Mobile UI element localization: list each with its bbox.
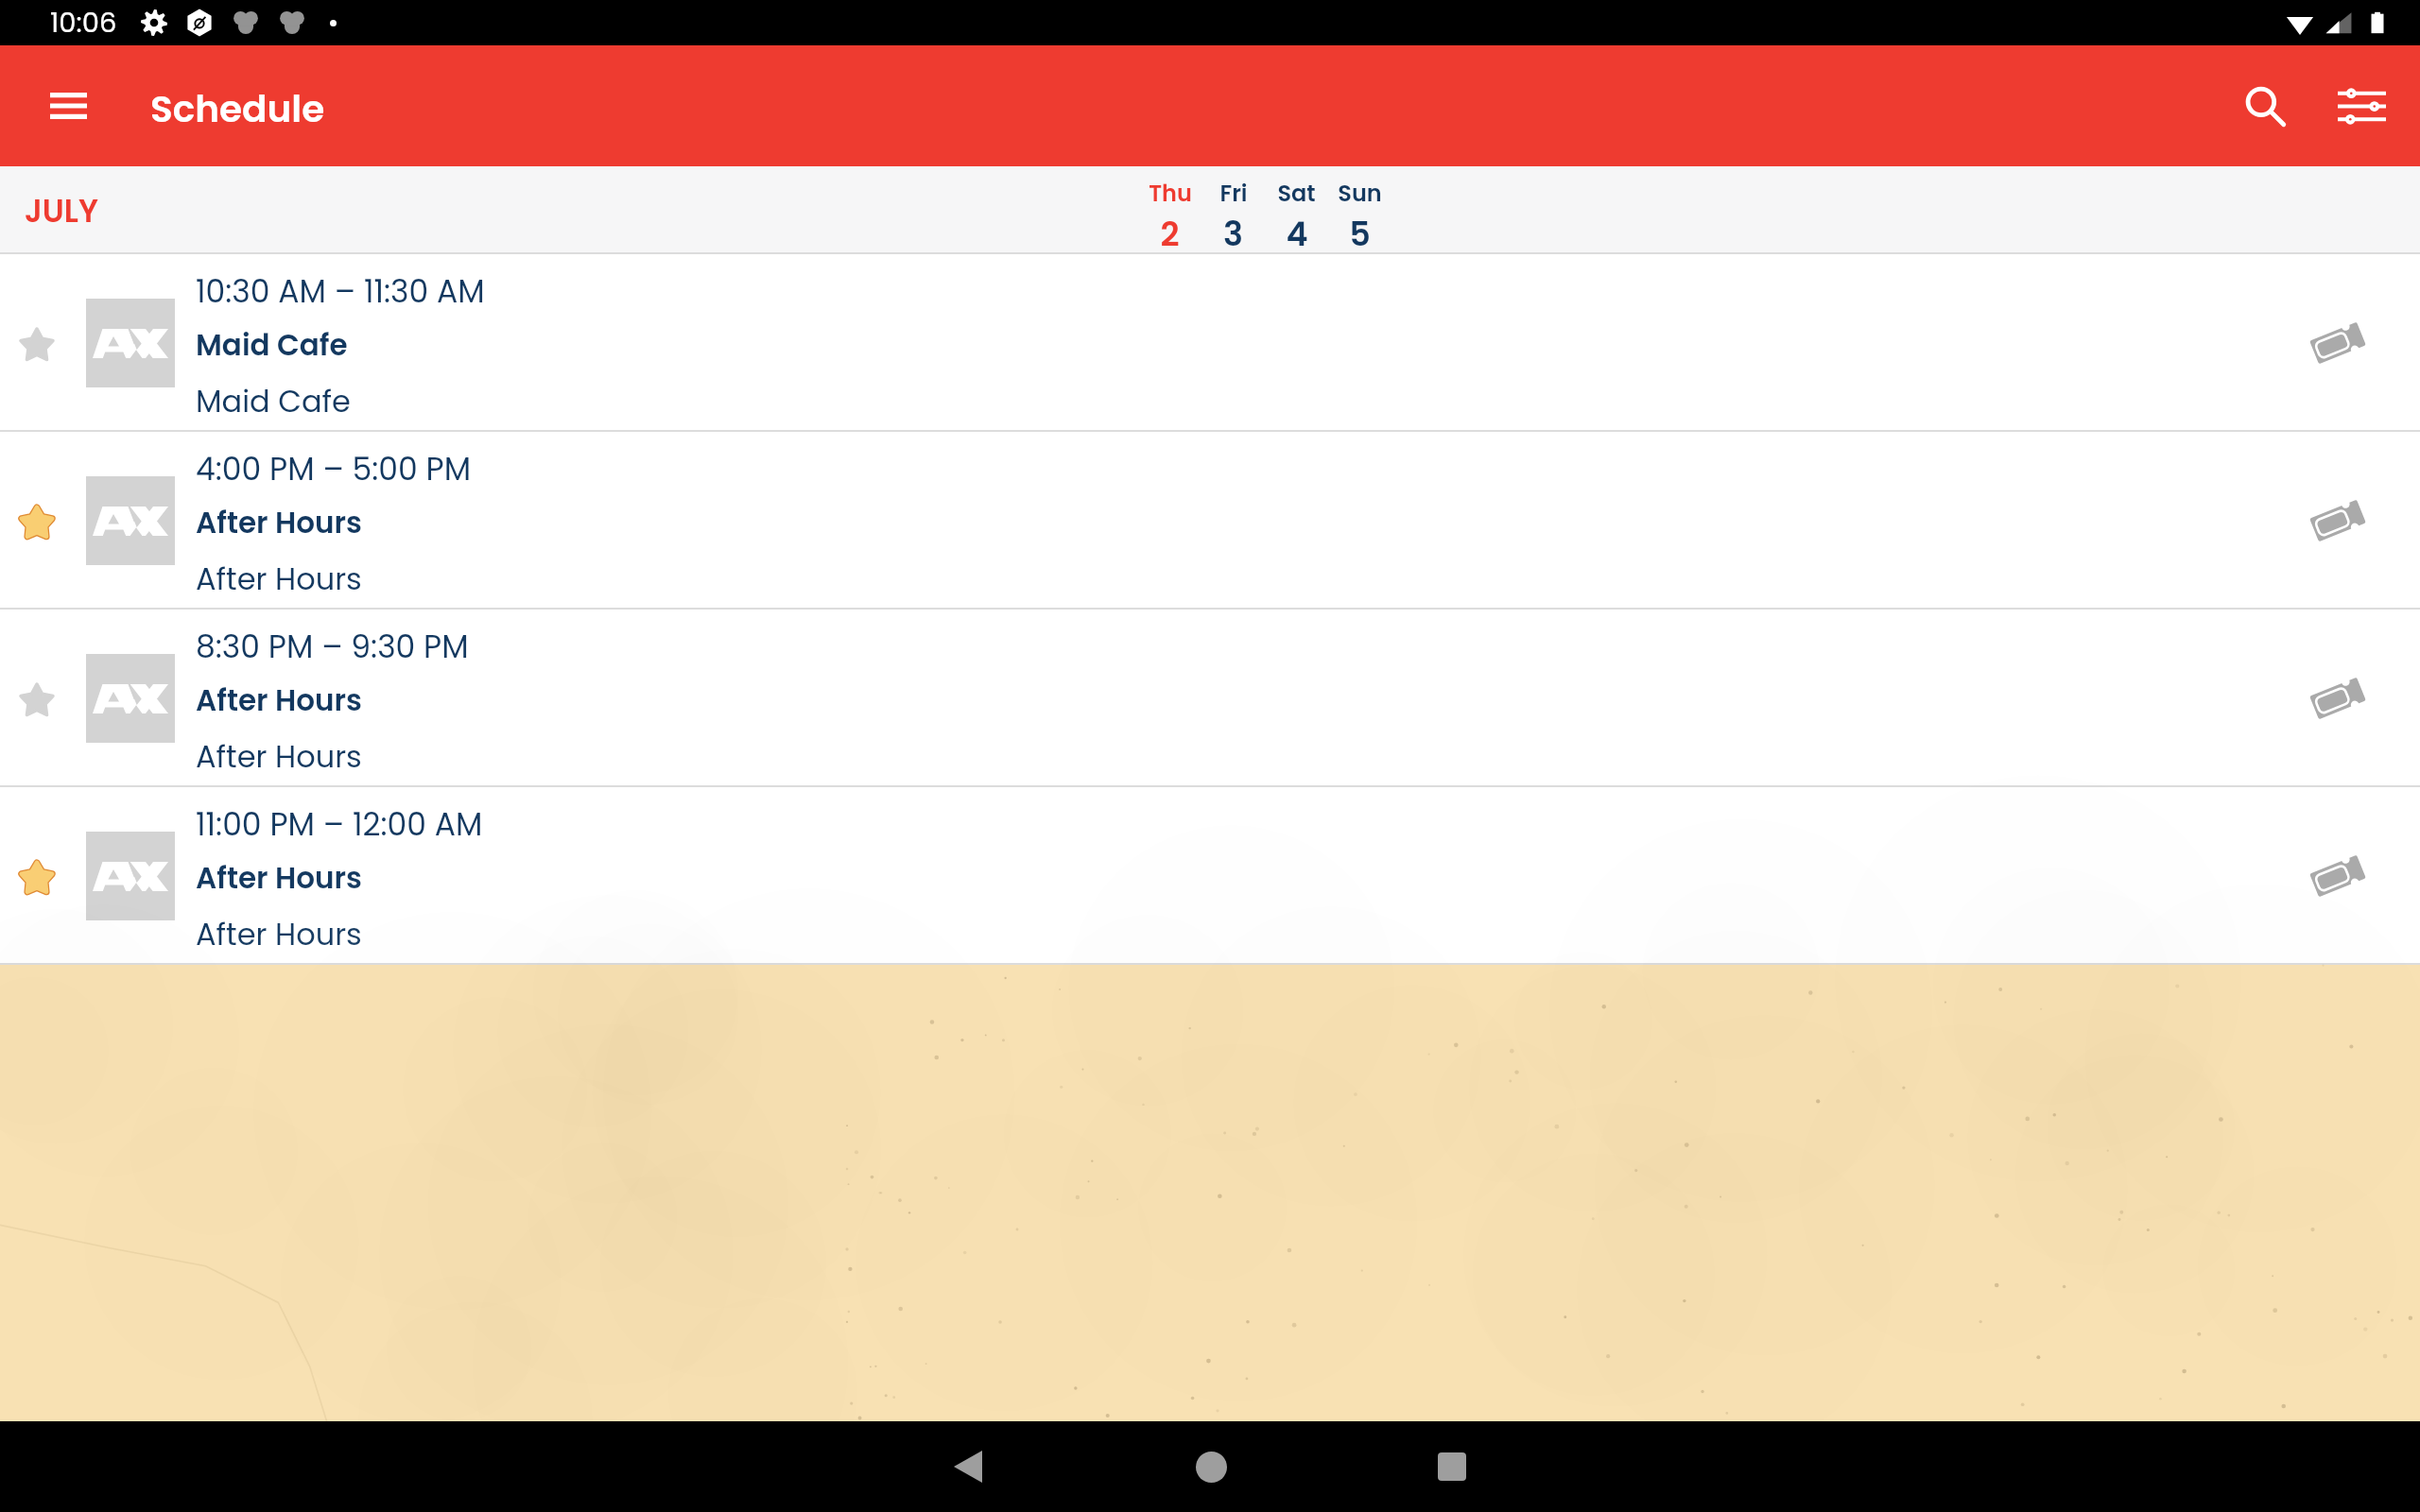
staticText: 10:06 [50, 4, 117, 43]
staticText: Thu [1149, 178, 1192, 210]
button[interactable]: Back [934, 1433, 1002, 1501]
staticText: 10:30 AM – 11:30 AM [196, 269, 485, 313]
staticText: 5 [1349, 211, 1371, 257]
staticText: 2 [1160, 211, 1180, 257]
button[interactable]: Add favourite [14, 322, 60, 368]
staticText: 3 [1223, 211, 1243, 257]
button[interactable]: Filter [2325, 70, 2397, 142]
button[interactable]: Home [1177, 1433, 1245, 1501]
button[interactable]: Add favourite [0, 254, 2420, 432]
staticText: After Hours [196, 735, 362, 778]
button[interactable]: Remove favourite [14, 855, 60, 901]
button[interactable]: Search [2229, 70, 2301, 142]
staticText: Maid Cafe [196, 380, 351, 422]
button[interactable]: Add favourite [0, 610, 2420, 787]
staticText: JULY [25, 189, 98, 232]
staticText: Sun [1338, 178, 1382, 210]
button[interactable]: Ticket [2307, 312, 2369, 374]
staticText: Fri [1219, 178, 1248, 210]
button[interactable]: Sun [1328, 178, 1391, 257]
button[interactable]: Ticket [2307, 490, 2369, 552]
button[interactable]: Ticket [2307, 845, 2369, 907]
staticText: After Hours [196, 913, 362, 955]
button[interactable]: Remove favourite [0, 787, 2420, 965]
staticText: After Hours [196, 502, 362, 542]
staticText: After Hours [196, 679, 362, 720]
button[interactable]: Remove favourite [0, 432, 2420, 610]
staticText: Sat [1277, 178, 1316, 210]
staticText: 4 [1286, 211, 1308, 257]
button[interactable]: Sat [1265, 178, 1328, 257]
staticText: Schedule [150, 83, 325, 135]
staticText: After Hours [196, 558, 362, 600]
button[interactable]: Navigation menu [40, 77, 96, 134]
button[interactable]: Ticket [2307, 667, 2369, 730]
staticText: 4:00 PM – 5:00 PM [196, 447, 472, 490]
staticText: 8:30 PM – 9:30 PM [196, 625, 469, 668]
button[interactable]: Remove favourite [14, 500, 60, 545]
staticText: Maid Cafe [196, 324, 348, 365]
button[interactable]: Thu [1138, 178, 1201, 257]
button[interactable]: Fri [1201, 178, 1265, 257]
button[interactable]: Add favourite [14, 678, 60, 723]
button[interactable]: Recent apps [1418, 1433, 1486, 1501]
staticText: After Hours [196, 857, 362, 898]
staticText: 11:00 PM – 12:00 AM [196, 802, 483, 846]
